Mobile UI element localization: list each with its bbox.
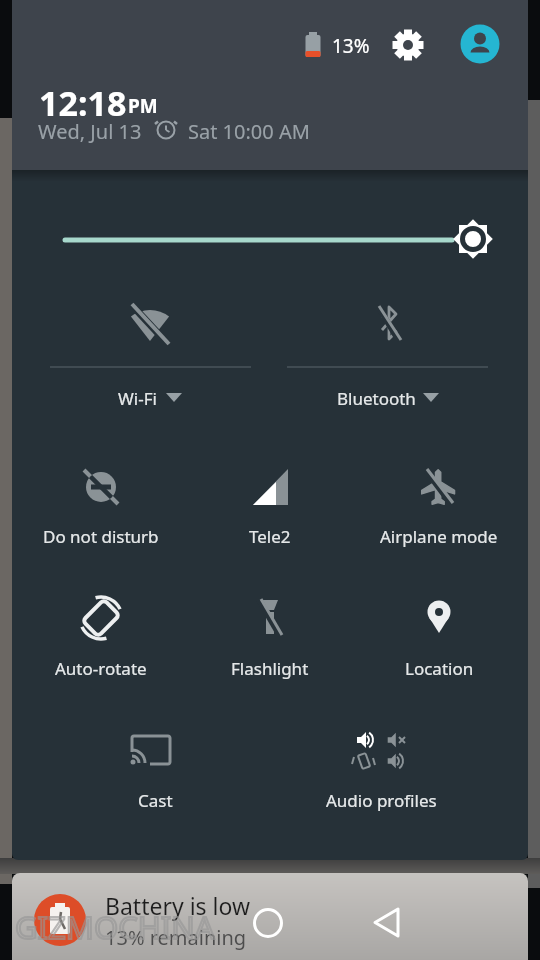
staticText: Location (405, 657, 474, 680)
button[interactable] (30, 572, 175, 702)
button[interactable] (367, 440, 512, 570)
button[interactable] (370, 905, 408, 943)
staticText: Cast (138, 789, 173, 812)
button[interactable] (275, 280, 525, 415)
staticText: Sat 10:00 AM (188, 118, 310, 145)
staticText: Audio profiles (326, 789, 437, 812)
staticText: PM (128, 93, 158, 119)
staticText: Do not disturb (43, 525, 159, 548)
button[interactable] (25, 704, 275, 834)
button[interactable] (40, 215, 500, 265)
staticText: Auto-rotate (55, 657, 147, 680)
staticText: 13% (332, 33, 370, 59)
button[interactable] (460, 25, 500, 65)
staticText: Flashlight (231, 657, 309, 680)
button[interactable] (198, 440, 343, 570)
staticText: Bluetooth (337, 387, 416, 410)
staticText: GIZMOCHINA (15, 906, 215, 948)
staticText: Tele2 (249, 525, 291, 548)
button[interactable] (390, 25, 430, 65)
button[interactable] (367, 572, 512, 702)
staticText: 13% remaining (105, 924, 247, 951)
staticText: Wi-Fi (118, 387, 157, 410)
button[interactable] (12, 873, 528, 960)
button[interactable] (275, 704, 525, 834)
staticText: Battery is low (105, 890, 251, 921)
staticText: Airplane mode (380, 525, 498, 548)
button[interactable] (250, 905, 288, 943)
staticText: Wed, Jul 13 (38, 118, 142, 145)
button[interactable] (198, 572, 343, 702)
staticText: 12:18 (39, 80, 127, 126)
button[interactable] (30, 440, 175, 570)
button[interactable] (25, 280, 275, 415)
